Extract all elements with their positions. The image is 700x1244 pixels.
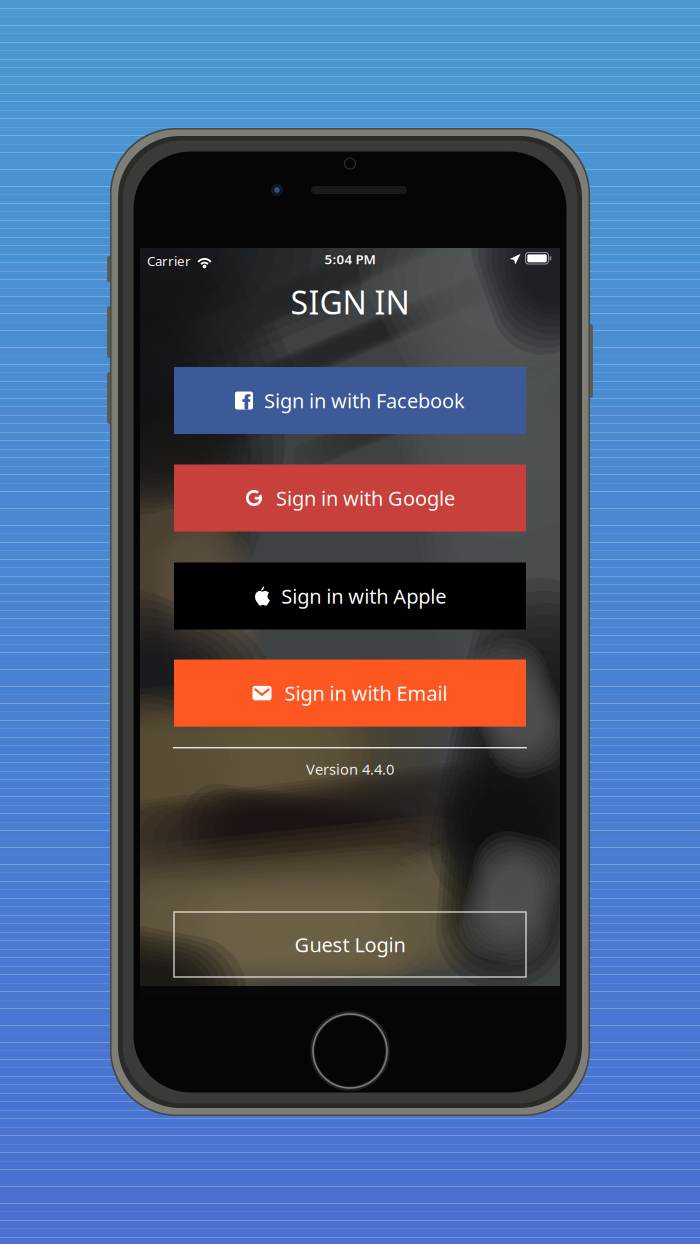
staticText: Version 4.4.0 (306, 759, 394, 779)
button[interactable]: Guest Login (174, 912, 526, 977)
staticText: Sign in with Facebook (264, 387, 465, 414)
button[interactable]: Sign in with Email (174, 660, 526, 727)
button[interactable]: Sign in with Google (174, 464, 526, 531)
staticText: Sign in with Apple (281, 583, 446, 609)
button[interactable]: Sign in with Facebook (174, 367, 526, 434)
button[interactable]: Sign in with Apple (174, 562, 526, 629)
staticText: Sign in with Google (276, 485, 455, 511)
staticText: Carrier (147, 252, 191, 270)
staticText: Guest Login (294, 931, 405, 958)
staticText: 5:04 PM (324, 250, 375, 268)
staticText: Sign in with Email (284, 680, 447, 706)
staticText: SIGN IN (290, 281, 409, 323)
